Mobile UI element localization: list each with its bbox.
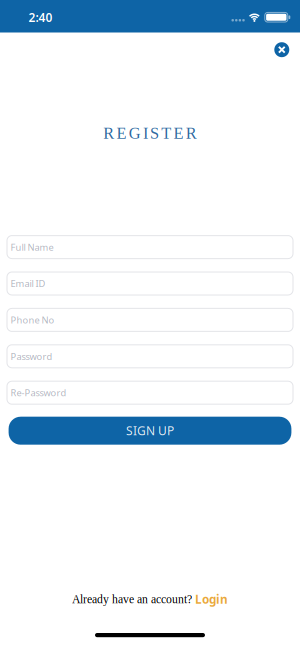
staticText: Already have an account?: [72, 593, 192, 606]
staticText: Password: [10, 350, 52, 362]
button[interactable]: Phone No: [7, 308, 293, 331]
staticText: T: [161, 124, 171, 142]
staticText: R: [103, 124, 114, 142]
staticText: Full Name: [10, 241, 53, 253]
button[interactable]: Full Name: [7, 236, 293, 259]
staticText: Email ID: [10, 277, 45, 290]
staticText: 2:40: [28, 9, 52, 25]
button[interactable]: Close: [274, 42, 289, 57]
button[interactable]: Re-Password: [7, 381, 293, 404]
button[interactable]: Password: [7, 345, 293, 368]
staticText: Phone No: [10, 314, 54, 326]
staticText: SIGN UP: [126, 423, 174, 439]
button[interactable]: SIGN UP: [9, 417, 291, 445]
staticText: R: [186, 124, 197, 142]
staticText: Login: [195, 591, 228, 607]
staticText: E: [173, 124, 183, 142]
staticText: I: [143, 124, 148, 142]
staticText: E: [116, 124, 126, 142]
staticText: Re-Password: [10, 386, 66, 399]
button[interactable]: Email ID: [7, 272, 293, 295]
button[interactable]: Already have an account?: [72, 592, 228, 606]
staticText: G: [129, 124, 141, 142]
staticText: S: [150, 124, 159, 142]
